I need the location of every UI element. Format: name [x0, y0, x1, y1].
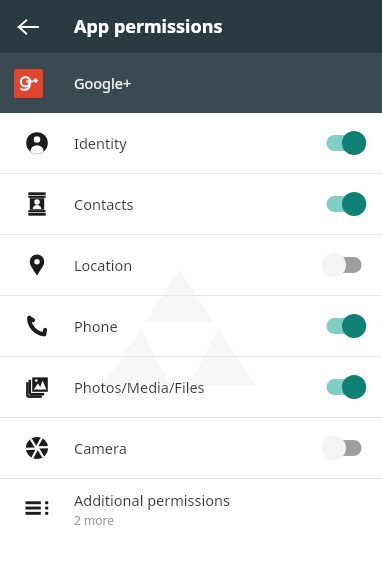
button[interactable]: Additional permissions [0, 479, 382, 539]
button[interactable]: Camera off [320, 426, 368, 470]
button[interactable]: Contacts on [320, 182, 368, 226]
staticText: App permissions [74, 14, 223, 39]
staticText: Contacts [74, 194, 320, 214]
button[interactable]: Photos/Media/Files [0, 357, 382, 417]
button[interactable]: Location [0, 235, 382, 295]
button[interactable]: Back [8, 7, 48, 47]
button[interactable]: Google+ [0, 53, 382, 113]
button[interactable]: Location off [320, 243, 368, 287]
button[interactable]: Camera [0, 418, 382, 478]
button[interactable]: Contacts [0, 174, 382, 234]
staticText: Identity [74, 133, 320, 153]
staticText: 2 more [74, 512, 114, 528]
button[interactable]: Identity on [320, 121, 368, 165]
button[interactable]: Identity [0, 113, 382, 173]
button[interactable]: Photos/Media/Files on [320, 365, 368, 409]
staticText: Location [74, 255, 320, 275]
button[interactable]: Phone [0, 296, 382, 356]
staticText: Additional permissions [74, 490, 230, 510]
staticText: Camera [74, 438, 320, 458]
staticText: Photos/Media/Files [74, 377, 320, 397]
button[interactable]: Phone on [320, 304, 368, 348]
staticText: Phone [74, 316, 320, 336]
staticText: Google+ [74, 73, 132, 93]
